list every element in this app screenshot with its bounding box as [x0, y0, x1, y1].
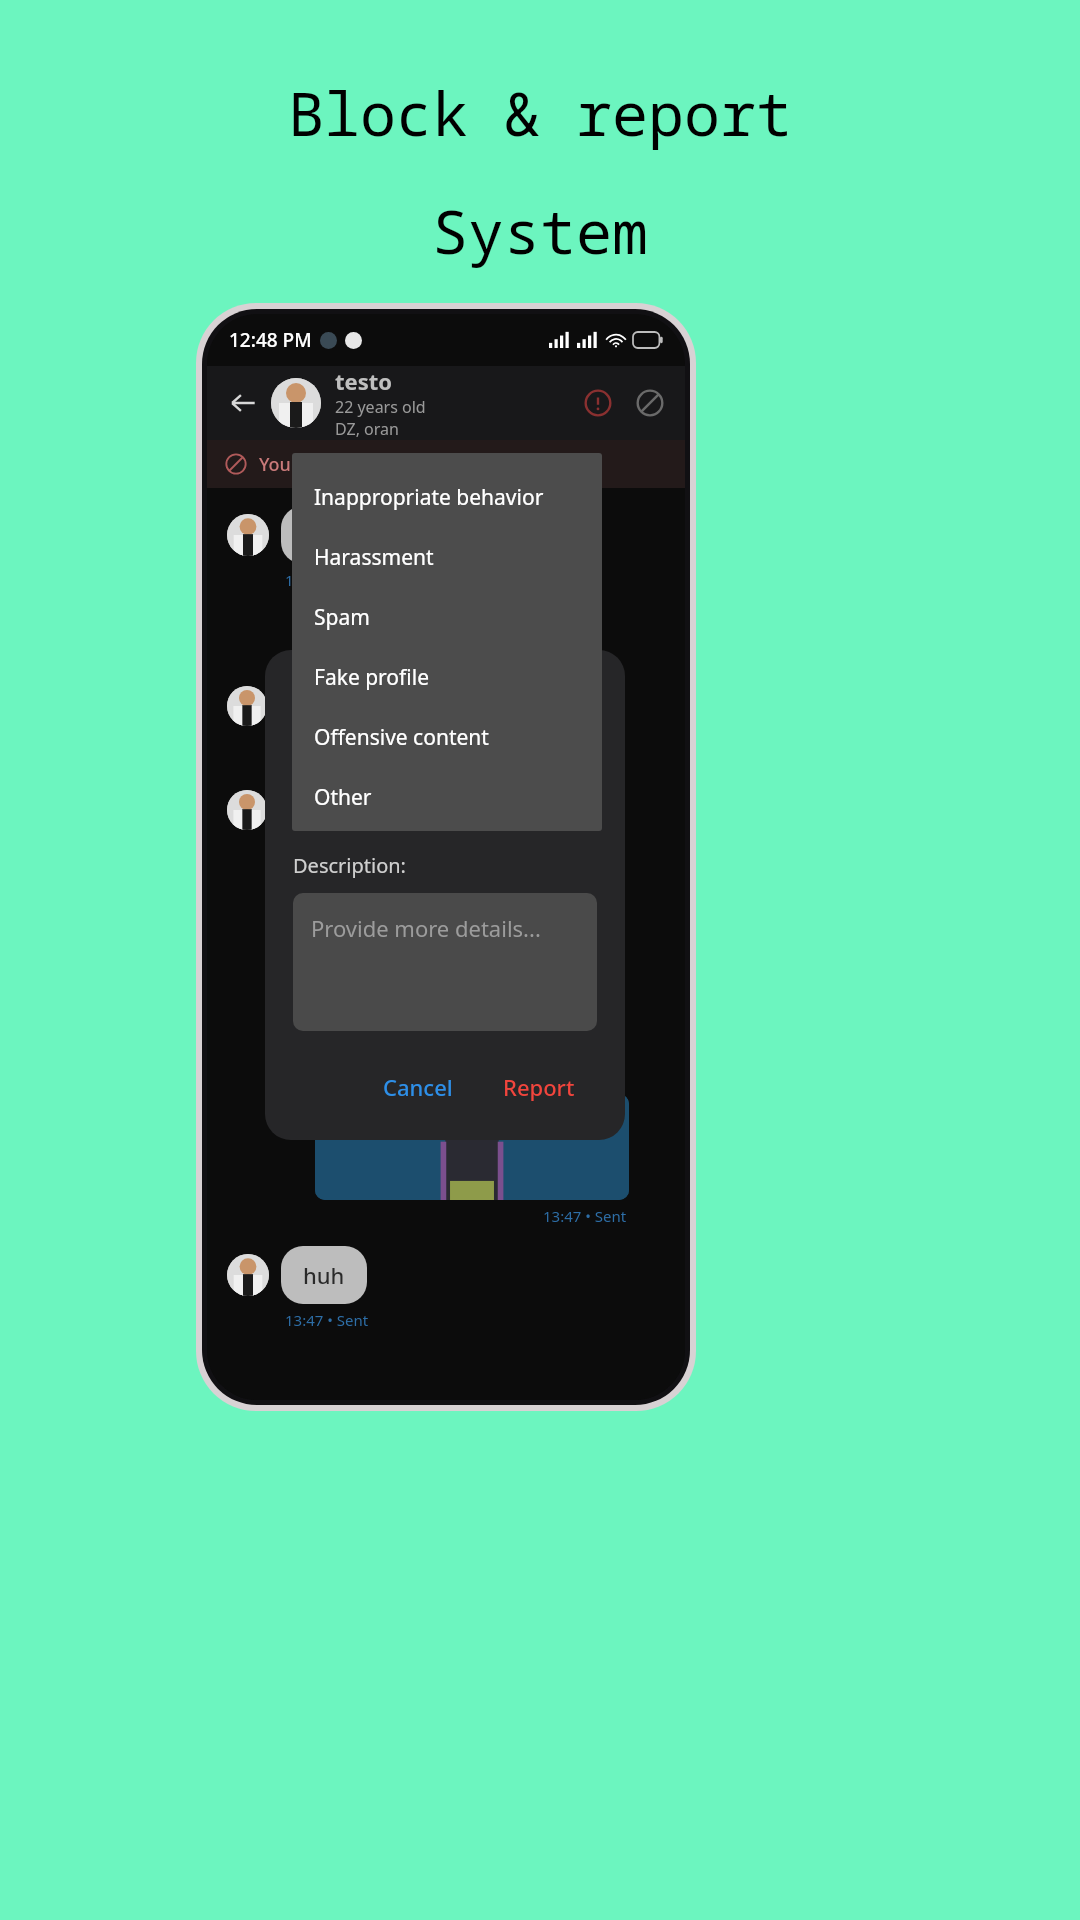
staticText: huh — [303, 1260, 345, 1290]
staticText: DZ, oran — [335, 418, 399, 440]
button[interactable]: Report — [491, 1064, 587, 1110]
staticText: Fake profile — [314, 663, 429, 692]
staticText: 13:47 • Sent — [285, 1310, 369, 1330]
button[interactable]: Harassment — [292, 527, 602, 587]
button[interactable]: Block — [629, 382, 671, 424]
staticText: Offensive content — [314, 723, 489, 752]
staticText: You have blocked this user — [259, 452, 489, 477]
button[interactable]: Offensive content — [292, 707, 602, 767]
button[interactable]: huh — [303, 1260, 345, 1290]
button[interactable]: Back — [221, 381, 265, 425]
button[interactable]: Cancel — [371, 1064, 465, 1110]
staticText: h — [303, 520, 317, 550]
button[interactable]: Report — [577, 382, 619, 424]
button[interactable]: Other — [292, 767, 602, 827]
staticText: 22 years old — [335, 396, 426, 418]
staticText: Report — [503, 1072, 575, 1102]
button[interactable]: Spam — [292, 587, 602, 647]
staticText: Spam — [314, 603, 370, 632]
staticText: 13:4 — [285, 570, 315, 590]
staticText: 13:47 • Sent — [543, 1206, 627, 1226]
button[interactable]: Inappropriate behavior — [292, 467, 602, 527]
button[interactable]: Fake profile — [292, 647, 602, 707]
button[interactable]: h — [303, 520, 317, 550]
staticText: 12:48 PM — [229, 327, 312, 353]
button[interactable]: Provide more details... — [293, 893, 597, 1031]
staticText: System — [432, 190, 648, 272]
staticText: Block & report — [288, 72, 792, 154]
staticText: Cancel — [383, 1072, 453, 1102]
staticText: testo — [335, 366, 393, 396]
staticText: Description: — [293, 852, 406, 879]
staticText: Other — [314, 783, 372, 812]
staticText: Provide more details... — [311, 913, 541, 943]
staticText: Harassment — [314, 543, 434, 572]
staticText: Inappropriate behavior — [314, 483, 544, 512]
